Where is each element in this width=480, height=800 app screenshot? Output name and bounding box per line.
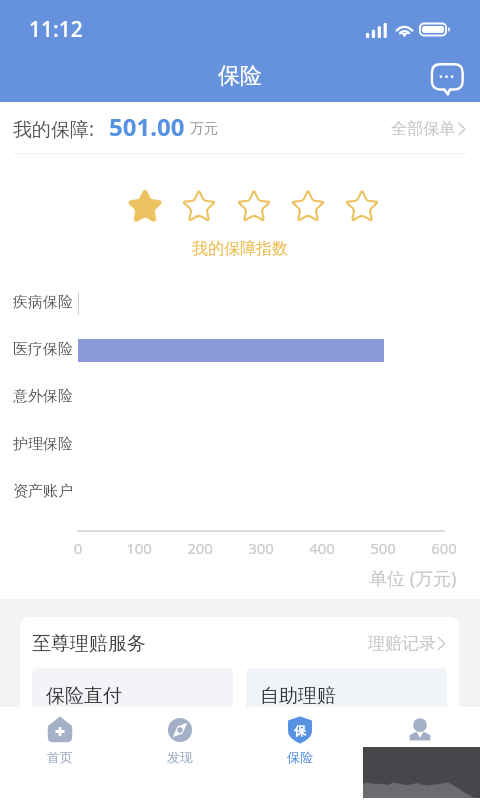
- staticText: 保险直付: [46, 684, 122, 708]
- button[interactable]: 保: [240, 707, 360, 777]
- staticText: 医疗保险: [13, 340, 73, 359]
- staticText: 资产账户: [13, 482, 73, 501]
- staticText: 理赔记录: [368, 633, 436, 654]
- staticText: 意外保险: [13, 387, 73, 406]
- staticText: 保险: [218, 62, 262, 90]
- staticText: 保险: [287, 749, 313, 765]
- button[interactable]: 我的保障:: [0, 102, 480, 154]
- staticText: 501.00: [109, 110, 185, 143]
- staticText: 首页: [47, 749, 73, 765]
- staticText: 保: [294, 723, 306, 738]
- staticText: 我的保障:: [13, 116, 95, 142]
- staticText: 200: [175, 538, 225, 558]
- staticText: 11:12: [29, 15, 83, 44]
- staticText: 400: [297, 538, 347, 558]
- staticText: 疾病保险: [13, 293, 73, 312]
- staticText: 护理保险: [13, 435, 73, 454]
- staticText: 300: [236, 538, 286, 558]
- button[interactable]: 我的: [360, 707, 480, 777]
- button[interactable]: 自助理赔: [246, 668, 447, 738]
- staticText: 全部保单: [391, 119, 455, 139]
- staticText: 单位 (万元): [369, 566, 457, 591]
- button[interactable]: 首页: [0, 707, 120, 777]
- staticText: 自助理赔: [260, 684, 336, 708]
- staticText: 至尊理赔服务: [32, 632, 146, 656]
- staticText: 600: [419, 538, 469, 558]
- staticText: 500: [358, 538, 408, 558]
- button[interactable]: 发现: [120, 707, 240, 777]
- staticText: 发现: [167, 749, 193, 765]
- staticText: 0: [53, 538, 103, 558]
- staticText: 我的保障指数: [0, 239, 480, 259]
- button[interactable]: 理赔记录: [368, 633, 446, 654]
- button[interactable]: Messages: [430, 62, 470, 102]
- staticText: 万元: [190, 120, 218, 138]
- staticText: 100: [114, 538, 164, 558]
- button[interactable]: 保险直付: [32, 668, 233, 738]
